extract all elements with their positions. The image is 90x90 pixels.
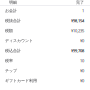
button[interactable]: 税額 xyxy=(0,26,90,36)
button[interactable]: 税込合計 xyxy=(0,46,90,56)
staticText: 1 xyxy=(82,8,84,13)
staticText: ¥10,235 xyxy=(71,28,84,33)
staticText: 完了 xyxy=(76,0,84,5)
staticText: 10 xyxy=(80,58,84,63)
staticText: お会計 xyxy=(5,8,17,13)
staticText: ディスカウント xyxy=(5,38,33,43)
button[interactable]: 明細 xyxy=(0,0,17,5)
button[interactable]: 税率 xyxy=(0,56,90,66)
staticText: 税率 xyxy=(5,58,13,63)
staticText: ギフトカード利用 xyxy=(5,78,37,83)
staticText: ¥0 xyxy=(80,38,84,43)
button[interactable]: 完了 xyxy=(76,0,90,5)
button[interactable]: ギフトカード利用 xyxy=(0,76,90,86)
staticText: ¥0 xyxy=(80,68,84,73)
button[interactable]: お会計 xyxy=(0,6,90,16)
staticText: 明細 xyxy=(9,0,17,5)
button[interactable]: 税抜合計 xyxy=(0,16,90,26)
staticText: 税額 xyxy=(5,28,13,33)
staticText: 税込合計 xyxy=(5,48,21,53)
staticText: ¥98,154 xyxy=(71,18,84,23)
staticText: チップ xyxy=(5,68,17,73)
button[interactable]: ディスカウント xyxy=(0,36,90,46)
staticText: 税抜合計 xyxy=(5,18,21,23)
button[interactable]: チップ xyxy=(0,66,90,76)
staticText: ¥0 xyxy=(80,78,84,83)
staticText: ¥99,708 xyxy=(71,48,84,53)
